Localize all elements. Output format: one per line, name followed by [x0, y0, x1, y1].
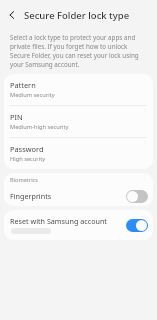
button[interactable]: On — [126, 219, 148, 232]
button[interactable]: Fingerprints — [4, 186, 153, 206]
staticText: Medium security — [10, 91, 55, 99]
button[interactable]: Pattern — [4, 74, 153, 105]
staticText: Secure Folder lock type — [24, 9, 130, 22]
staticText: High security — [10, 155, 46, 163]
staticText: Biometrics — [10, 176, 38, 184]
staticText: Fingerprints — [10, 191, 126, 201]
staticText: Pattern — [10, 80, 36, 90]
button[interactable]: PIN — [4, 106, 153, 137]
button[interactable]: Reset with Samsung account — [4, 210, 153, 240]
button[interactable]: Password — [4, 138, 153, 169]
button[interactable]: Off — [126, 190, 148, 203]
staticText: Password — [10, 144, 44, 154]
staticText: Select a lock type to protect your apps … — [10, 33, 148, 69]
button[interactable]: Back — [4, 7, 20, 23]
staticText: Medium-high security — [10, 123, 69, 131]
staticText: PIN — [10, 112, 23, 122]
staticText: Reset with Samsung account — [10, 216, 107, 226]
